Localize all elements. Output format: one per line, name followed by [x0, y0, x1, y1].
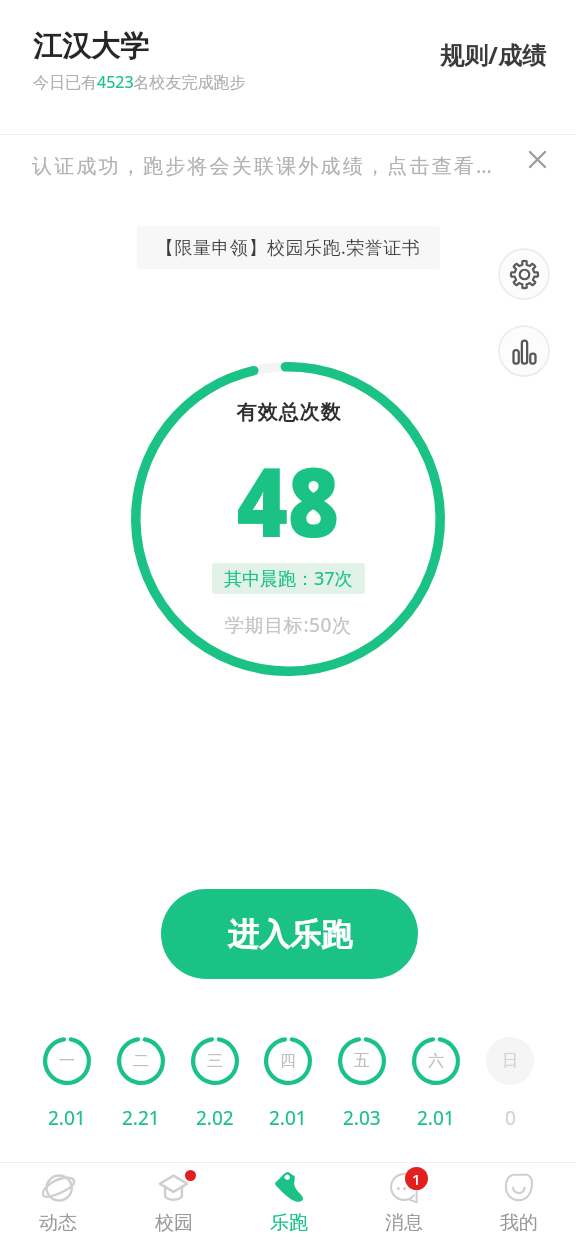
staticText: 2.01 — [417, 1105, 455, 1131]
button[interactable]: 【限量申领】校园乐跑.荣誉证书 — [137, 226, 440, 269]
button[interactable]: 进入乐跑 — [161, 889, 418, 979]
staticText: 消息 — [385, 1211, 423, 1235]
staticText: 校园 — [155, 1211, 193, 1235]
staticText: 其中晨跑：37次 — [224, 566, 353, 591]
staticText: 规则/成绩 — [440, 38, 546, 71]
staticText: 2.21 — [122, 1105, 160, 1131]
button[interactable]: 我的 — [461, 1163, 576, 1235]
button[interactable]: Close — [521, 143, 553, 175]
staticText: 日 — [502, 1051, 518, 1071]
staticText: 动态 — [39, 1211, 77, 1235]
staticText: 乐跑 — [270, 1211, 308, 1235]
staticText: 【限量申领】校园乐跑.荣誉证书 — [156, 235, 421, 260]
staticText: 1 — [412, 1169, 421, 1189]
staticText: 0 — [505, 1105, 516, 1131]
staticText: 有效总次数 — [236, 400, 341, 425]
staticText: 三 — [207, 1051, 223, 1071]
staticText: 2.03 — [343, 1105, 381, 1131]
staticText: 六 — [428, 1051, 444, 1071]
staticText: 江汉大学 — [33, 28, 149, 65]
staticText: 一 — [59, 1051, 75, 1071]
staticText: 今日已有4523名校友完成跑步 — [33, 71, 246, 93]
button[interactable]: Settings — [498, 248, 550, 300]
staticText: 2.01 — [48, 1105, 86, 1131]
staticText: 2.02 — [196, 1105, 234, 1131]
staticText: 进入乐跑 — [228, 915, 352, 954]
staticText: 2.01 — [269, 1105, 307, 1131]
staticText: 五 — [354, 1051, 370, 1071]
staticText: 认证成功，跑步将会关联课外成绩，点击查看… — [32, 152, 495, 179]
staticText: 二 — [133, 1051, 149, 1071]
button[interactable]: 1 — [346, 1163, 461, 1235]
button[interactable]: 规则/成绩 — [434, 34, 552, 75]
button[interactable]: 动态 — [0, 1163, 116, 1235]
staticText: 我的 — [500, 1211, 538, 1235]
button[interactable]: 乐跑 — [231, 1163, 346, 1235]
button[interactable]: 校园 — [116, 1163, 231, 1235]
staticText: 48 — [236, 435, 340, 565]
staticText: 四 — [280, 1051, 296, 1071]
staticText: 学期目标:50次 — [225, 612, 352, 638]
button[interactable]: Statistics — [498, 325, 550, 377]
